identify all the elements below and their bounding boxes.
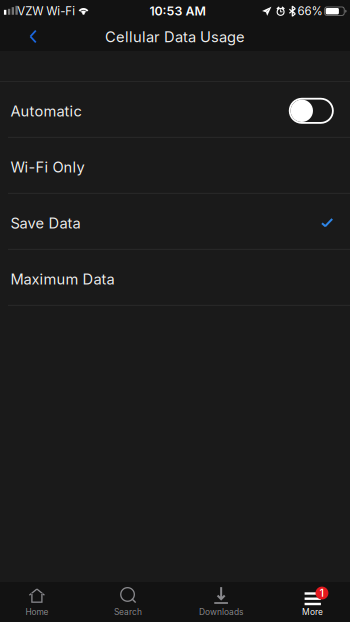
button[interactable]: 1	[269, 582, 350, 622]
button[interactable]: Save Data	[0, 194, 350, 250]
button[interactable]: Home	[0, 582, 80, 622]
button[interactable]: Automatic	[0, 82, 350, 138]
staticText: Search	[114, 607, 142, 617]
staticText: More	[302, 607, 323, 617]
staticText: Automatic	[10, 102, 81, 120]
button[interactable]: Search	[85, 582, 171, 622]
staticText: VZW Wi-Fi	[17, 4, 75, 18]
staticText: Cellular Data Usage	[105, 28, 245, 46]
button[interactable]: Downloads	[178, 582, 264, 622]
staticText: Home	[25, 607, 48, 617]
staticText: Downloads	[199, 607, 243, 617]
staticText: Maximum Data	[10, 270, 114, 288]
button[interactable]: Wi-Fi Only	[0, 138, 350, 194]
staticText: 10:53 AM	[149, 3, 205, 18]
staticText: 66%	[298, 4, 323, 18]
staticText: 1	[319, 586, 324, 599]
button[interactable]: Back	[11, 22, 55, 51]
staticText: Save Data	[10, 214, 80, 232]
staticText: Wi-Fi Only	[10, 158, 84, 176]
button[interactable]: Maximum Data	[0, 250, 350, 306]
